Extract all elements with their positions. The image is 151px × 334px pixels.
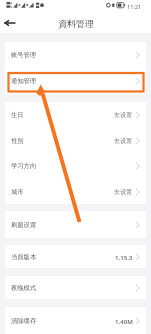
staticText: 清除缓存: [11, 317, 37, 325]
button[interactable]: 城市: [5, 179, 146, 204]
button[interactable]: 生日: [5, 102, 146, 128]
staticText: 当前版本: [11, 253, 37, 261]
staticText: 城市: [11, 188, 24, 196]
button[interactable]: 账号管理: [5, 42, 146, 68]
button[interactable]: 刷题设置: [5, 211, 146, 238]
button[interactable]: Back: [0, 13, 20, 33]
staticText: 11:21: [127, 3, 142, 11]
staticText: 刷题设置: [11, 221, 37, 229]
staticText: 1.40M: [115, 317, 133, 325]
staticText: 1.15.3: [115, 253, 133, 261]
button[interactable]: 夜晚模式: [5, 276, 146, 299]
staticText: 通知管理: [11, 77, 37, 85]
staticText: 性别: [11, 137, 24, 145]
button[interactable]: 性别: [5, 128, 146, 153]
staticText: 账号管理: [11, 51, 37, 59]
staticText: 去设置: [114, 111, 133, 119]
button[interactable]: 当前版本: [5, 245, 146, 268]
staticText: 生日: [11, 111, 24, 119]
staticText: 去设置: [114, 137, 133, 145]
button[interactable]: 学习方向: [5, 153, 146, 179]
button[interactable]: 通知管理: [5, 68, 146, 94]
staticText: 去设置: [114, 188, 133, 196]
button[interactable]: 清除缓存: [5, 307, 146, 334]
staticText: 夜晚模式: [11, 284, 37, 292]
staticText: 学习方向: [11, 162, 37, 170]
staticText: 資料管理: [58, 18, 94, 29]
